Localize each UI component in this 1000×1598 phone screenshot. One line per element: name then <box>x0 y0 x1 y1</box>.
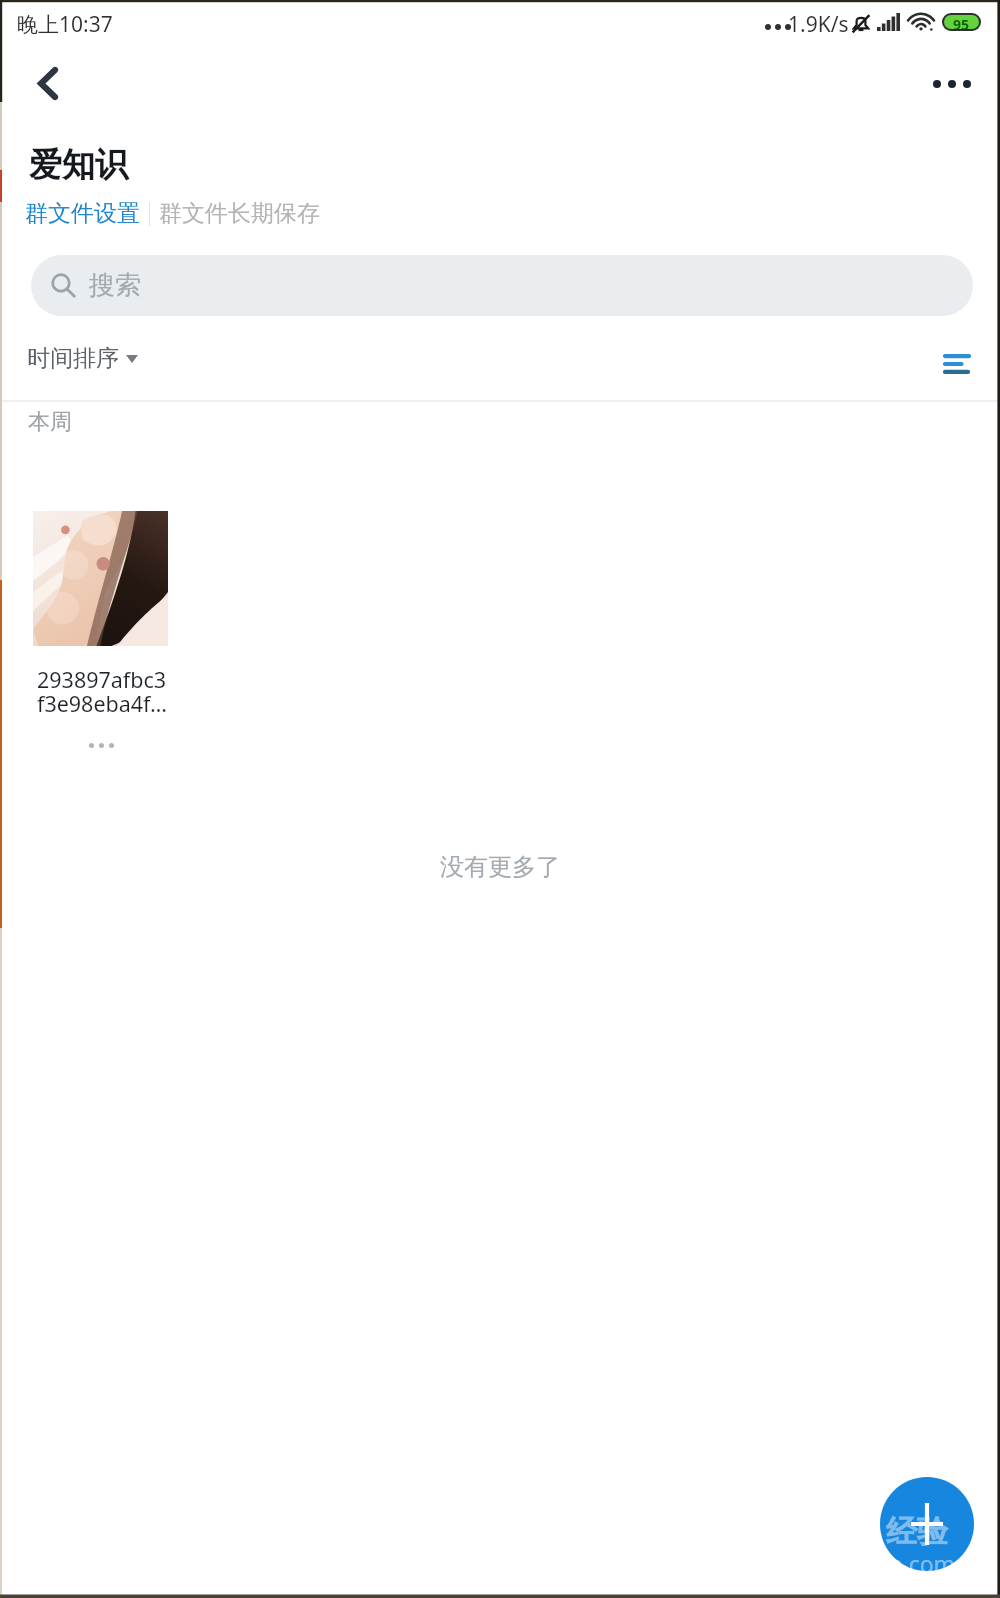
button[interactable] <box>33 511 168 646</box>
staticText: 群文件设置 <box>25 199 140 228</box>
staticText: 没有更多了 <box>0 852 1000 882</box>
staticText: 晚上10:37 <box>17 10 113 39</box>
button[interactable]: 时间排序 <box>27 342 138 375</box>
staticText: 爱知识 <box>29 144 128 186</box>
button[interactable]: Switch view <box>932 338 982 388</box>
staticText: 时间排序 <box>27 344 119 373</box>
button[interactable]: 群文件设置 <box>25 197 140 230</box>
staticText: 群文件长期保存 <box>159 199 320 228</box>
staticText: m.com <box>881 1548 956 1579</box>
staticText: 搜索 <box>89 269 141 302</box>
button[interactable]: Upload file <box>880 1477 974 1571</box>
staticText: 经验 <box>886 1512 948 1551</box>
staticText: 1.9K/s <box>788 10 849 39</box>
button[interactable]: 群文件长期保存 <box>159 197 320 230</box>
button[interactable]: File actions <box>89 736 123 754</box>
staticText: 本周 <box>28 408 72 436</box>
button[interactable]: Back <box>16 54 80 112</box>
button[interactable]: More options <box>920 56 984 112</box>
staticText: 95 <box>953 15 970 29</box>
staticText: 293897afbc3 f3e98eba4f… <box>37 665 168 718</box>
button[interactable]: 搜索 <box>31 255 973 316</box>
